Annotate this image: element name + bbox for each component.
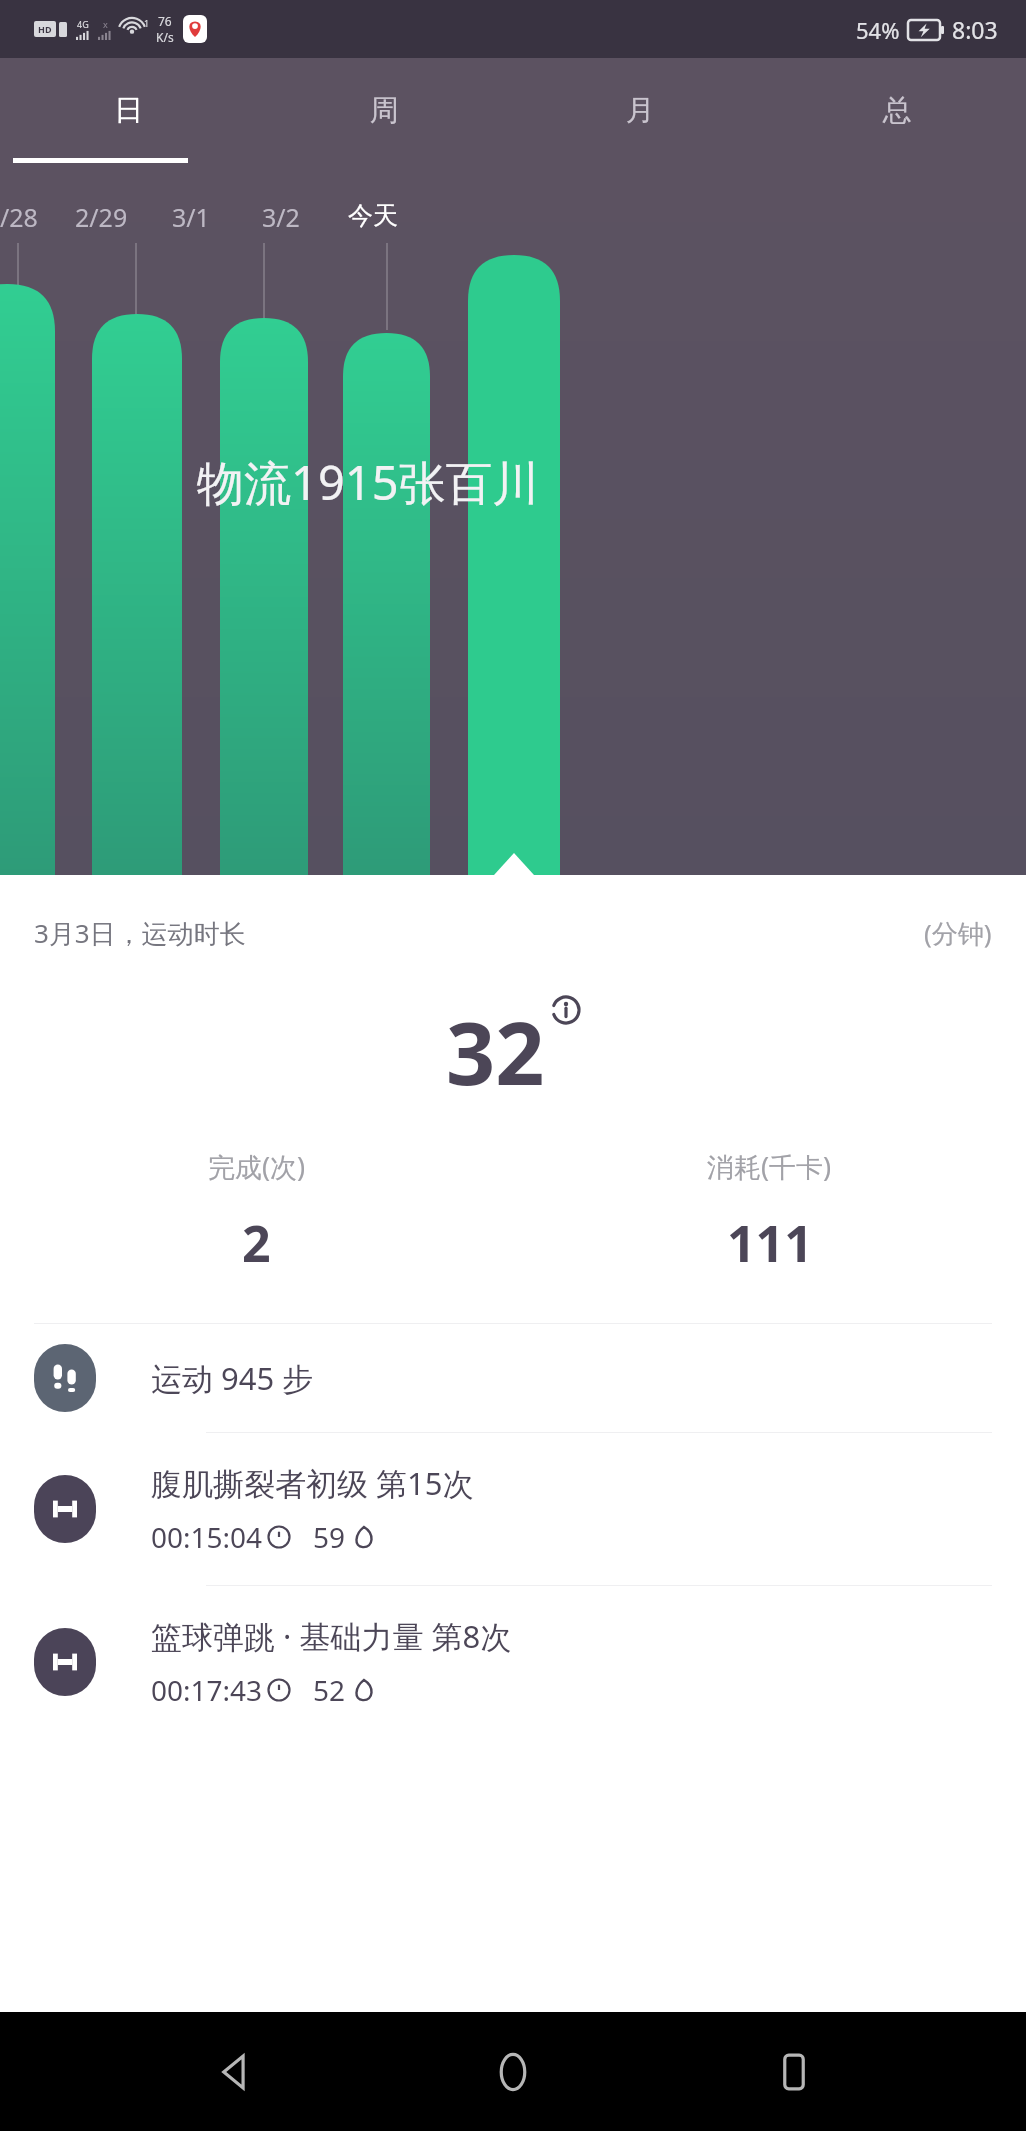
button[interactable]: 日 [0, 58, 256, 163]
button[interactable]: 消耗(千卡) [513, 1148, 1026, 1277]
staticText: 3/2 [262, 200, 300, 234]
button[interactable]: Recents [746, 2024, 842, 2120]
staticText: HD [38, 23, 52, 35]
staticText: 3月3日，运动时长 [34, 915, 246, 951]
staticText: 周 [370, 92, 399, 129]
staticText: 2 [242, 1209, 271, 1277]
button[interactable]: Back [185, 2024, 281, 2120]
staticText: 1 [144, 17, 150, 29]
staticText: 月 [626, 92, 655, 129]
staticText: x [103, 18, 108, 30]
staticText: 物流1915张百川 [197, 450, 540, 514]
staticText: 完成(次) [208, 1148, 306, 1185]
staticText: /28 [0, 200, 38, 234]
staticText: 32 [446, 993, 545, 1110]
staticText: 今天 [348, 200, 398, 231]
staticText: 52 [313, 1671, 346, 1709]
staticText: 日 [114, 92, 143, 129]
staticText: 111 [727, 1209, 813, 1277]
staticText: 00:15:04 [151, 1518, 263, 1556]
button[interactable]: 运动 945 步 [0, 1324, 1026, 1433]
staticText: 76 [158, 13, 172, 29]
staticText: 59 [313, 1518, 346, 1556]
button[interactable]: Info [551, 995, 581, 1025]
staticText: 4G [77, 18, 89, 30]
staticText: 总 [883, 92, 912, 129]
button[interactable]: 腹肌撕裂者初级 第15次 [0, 1433, 1026, 1586]
button[interactable]: Home [465, 2024, 561, 2120]
staticText: 运动 945 步 [151, 1357, 314, 1399]
button[interactable]: 完成(次) [0, 1148, 513, 1277]
staticText: (分钟) [924, 915, 992, 951]
staticText: 8:03 [952, 14, 998, 45]
staticText: 腹肌撕裂者初级 第15次 [151, 1462, 474, 1504]
button[interactable]: 周 [256, 58, 512, 163]
staticText: 3/1 [172, 200, 210, 234]
staticText: 54% [856, 15, 900, 45]
button[interactable]: 总 [769, 58, 1026, 163]
staticText: K/s [156, 29, 174, 45]
staticText: 00:17:43 [151, 1671, 263, 1709]
staticText: 2/29 [75, 200, 128, 234]
staticText: 消耗(千卡) [707, 1148, 832, 1185]
staticText: 篮球弹跳 · 基础力量 第8次 [151, 1615, 512, 1657]
button[interactable]: 月 [512, 58, 769, 163]
button[interactable]: 篮球弹跳 · 基础力量 第8次 [0, 1586, 1026, 1738]
